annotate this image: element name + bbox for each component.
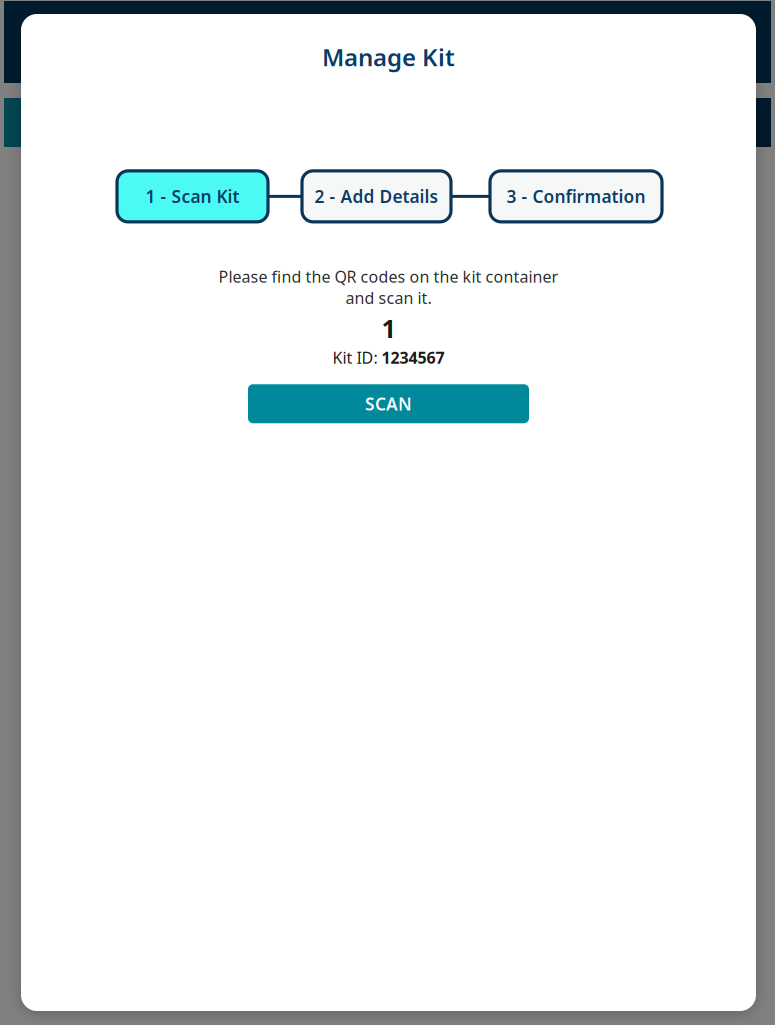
button[interactable]: 2 - Add Details [302,171,451,222]
staticText: SCAN [365,392,412,415]
staticText: 2 - Add Details [314,185,438,208]
button[interactable]: SCAN [248,384,529,423]
staticText: Please find the QR codes on the kit cont… [218,266,558,287]
button[interactable]: 3 - Confirmation [490,171,662,222]
staticText: Kit ID: 1234567 [332,347,444,368]
staticText: 1 [381,311,395,345]
staticText: and scan it. [345,287,431,308]
staticText: 1 - Scan Kit [145,185,239,208]
staticText: 3 - Confirmation [506,185,645,208]
button[interactable]: 1 - Scan Kit [117,171,268,222]
staticText: Manage Kit [322,41,455,73]
